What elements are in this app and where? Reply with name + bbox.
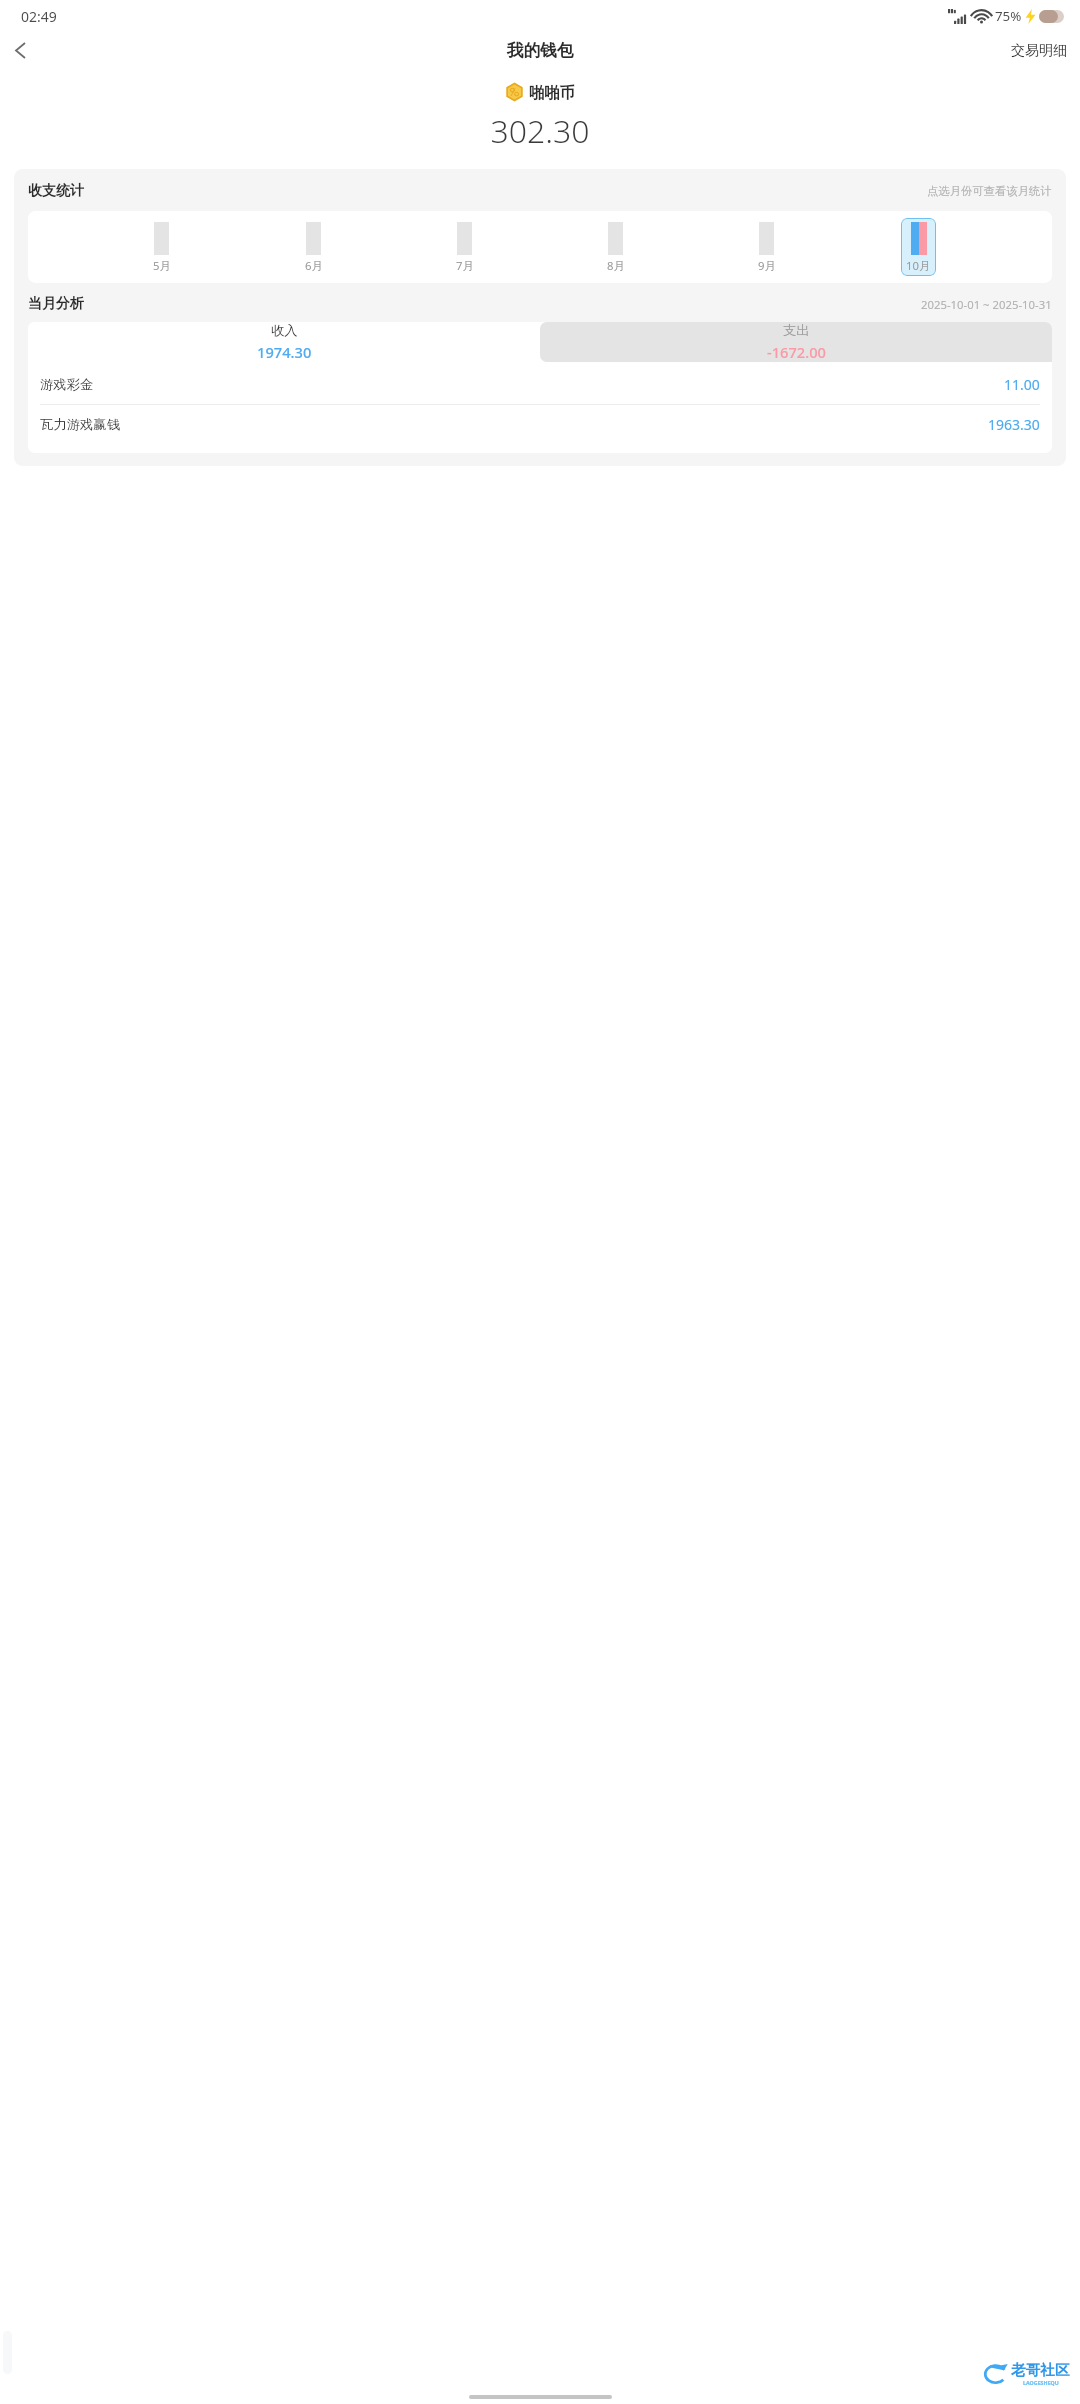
button[interactable]: 游戏彩金 — [28, 365, 1052, 404]
staticText: 游戏彩金 — [40, 376, 94, 393]
button[interactable]: 6月 — [296, 218, 331, 276]
button[interactable]: 8月 — [598, 218, 633, 276]
button[interactable]: 交易明细 — [998, 32, 1080, 69]
staticText: 75% — [995, 7, 1022, 25]
staticText: 8月 — [607, 258, 625, 273]
button[interactable]: 瓦力游戏赢钱 — [28, 405, 1052, 444]
staticText: 收支统计 — [28, 182, 84, 200]
button[interactable]: 9月 — [749, 218, 784, 276]
button[interactable]: 收入 — [28, 322, 540, 362]
staticText: 7月 — [456, 258, 474, 273]
button[interactable]: 5月 — [144, 218, 179, 276]
button[interactable]: 10月 — [901, 218, 936, 276]
staticText: 302.30 — [490, 109, 590, 153]
staticText: 5月 — [153, 258, 171, 273]
staticText: -1672.00 — [767, 342, 826, 362]
staticText: 收入 — [271, 322, 298, 339]
button[interactable]: 7月 — [447, 218, 482, 276]
staticText: 10月 — [906, 258, 931, 273]
staticText: 老哥社区 — [1011, 2361, 1070, 2379]
staticText: 11.00 — [1004, 375, 1040, 394]
staticText: 6月 — [305, 258, 323, 273]
button[interactable]: Back — [0, 32, 40, 69]
staticText: 支出 — [783, 322, 810, 339]
staticText: 当月分析 — [28, 295, 84, 313]
staticText: LAOGESHEQU — [1023, 2379, 1059, 2386]
staticText: 9月 — [758, 258, 776, 273]
staticText: 我的钱包 — [507, 40, 574, 61]
button[interactable]: 支出 — [540, 322, 1052, 362]
staticText: 交易明细 — [1011, 42, 1067, 60]
staticText: 02:49 — [21, 7, 57, 26]
staticText: 1963.30 — [988, 415, 1040, 434]
staticText: 啪啪币 — [529, 83, 575, 102]
staticText: 瓦力游戏赢钱 — [40, 416, 120, 433]
staticText: 2025-10-01 ~ 2025-10-31 — [921, 297, 1052, 312]
staticText: 1974.30 — [257, 342, 312, 362]
staticText: 点选月份可查看该月统计 — [927, 184, 1052, 198]
